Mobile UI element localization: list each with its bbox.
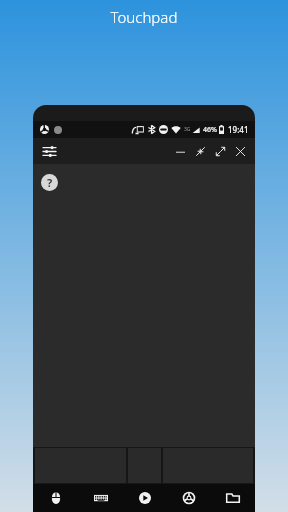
button[interactable]: Media — [123, 484, 167, 512]
staticText: 19:41 — [228, 124, 249, 135]
button[interactable]: Collapse — [190, 141, 210, 161]
button[interactable]: Expand — [210, 141, 230, 161]
button[interactable]: Settings — [39, 141, 59, 161]
button[interactable]: Minimize — [170, 141, 190, 161]
button[interactable]: Keyboard — [78, 484, 123, 512]
staticText: Touchpad — [0, 7, 288, 27]
staticText: 46% — [203, 125, 217, 135]
button[interactable]: Close — [230, 141, 250, 161]
button[interactable]: Touchpad — [33, 484, 78, 512]
staticText: ? — [47, 175, 53, 190]
button[interactable]: Files — [211, 484, 255, 512]
staticText: 3G — [184, 126, 191, 133]
button[interactable]: Help — [41, 174, 58, 191]
button[interactable]: Browser — [167, 484, 211, 512]
